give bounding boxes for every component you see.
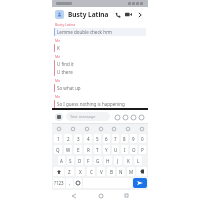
staticText: D (78, 158, 82, 164)
button[interactable]: Sticker (83, 125, 90, 132)
button[interactable]: Shift (53, 167, 64, 176)
button[interactable]: Text message (66, 112, 110, 121)
button[interactable]: V (97, 167, 105, 176)
button[interactable]: 2 (64, 134, 72, 143)
staticText: 9 (132, 136, 135, 142)
button[interactable]: 9 (130, 134, 137, 143)
button[interactable]: 6 (103, 134, 110, 143)
button[interactable]: L (134, 156, 142, 165)
button[interactable]: Y (103, 145, 110, 154)
button[interactable]: B (107, 167, 115, 176)
button[interactable]: Backspace (136, 167, 147, 176)
staticText: J (117, 158, 119, 164)
staticText: W (66, 147, 71, 153)
staticText: 8 (123, 136, 126, 142)
button[interactable]: Recents (122, 191, 131, 200)
button[interactable]: E (74, 145, 82, 154)
button[interactable] (55, 10, 64, 19)
staticText: L (137, 158, 140, 164)
staticText: K (57, 45, 60, 51)
button[interactable]: Q (54, 145, 62, 154)
button[interactable]: Home (96, 191, 105, 200)
staticText: Me (55, 54, 61, 59)
button[interactable]: 8 (121, 134, 128, 143)
button[interactable]: H (104, 156, 112, 165)
staticText: Me (55, 78, 61, 83)
button[interactable]: F (85, 156, 92, 165)
button[interactable]: More (134, 9, 145, 20)
button[interactable]: U there (54, 68, 146, 76)
button[interactable]: Emoji (74, 178, 82, 188)
button[interactable]: Gallery (129, 113, 137, 121)
staticText: P (141, 147, 144, 153)
button[interactable]: 4 (84, 134, 92, 143)
staticText: Busty Latina (55, 22, 76, 27)
staticText: ?123 (54, 180, 64, 186)
staticText: 7 (114, 136, 117, 142)
button[interactable]: GIF (69, 125, 76, 132)
staticText: E (77, 147, 80, 153)
button[interactable]: G (94, 156, 102, 165)
staticText: 4 (87, 136, 90, 142)
button[interactable]: 5 (94, 134, 101, 143)
button[interactable]: 0 (139, 134, 146, 143)
staticText: 1 (57, 136, 60, 142)
staticText: H (106, 158, 110, 164)
button[interactable]: Clipboard (97, 125, 104, 132)
button[interactable]: D (76, 156, 83, 165)
button[interactable]: Emoji (121, 113, 129, 121)
button[interactable]: So what up (54, 84, 146, 92)
staticText: R (87, 147, 90, 153)
button[interactable]: N (117, 167, 125, 176)
button[interactable]: Z (65, 167, 74, 176)
staticText: C (90, 169, 93, 175)
button[interactable]: Settings (110, 125, 117, 132)
staticText: S (69, 158, 72, 164)
button[interactable]: J (114, 156, 122, 165)
staticText: 0 (141, 136, 144, 142)
staticText: U find it (57, 61, 74, 67)
button[interactable]: O (130, 145, 137, 154)
button[interactable]: Back (69, 191, 78, 200)
button[interactable]: Call (112, 9, 123, 20)
button[interactable]: U find it (54, 60, 146, 68)
button[interactable]: Camera (55, 113, 63, 121)
button[interactable]: S (67, 156, 74, 165)
button[interactable]: I (121, 145, 128, 154)
button[interactable]: K (124, 156, 132, 165)
button[interactable]: Attach (137, 113, 145, 121)
staticText: 5 (96, 136, 99, 142)
button[interactable]: P (139, 145, 146, 154)
staticText: K (127, 158, 130, 164)
staticText: Text message (70, 114, 96, 119)
button[interactable]: Mic (138, 125, 145, 132)
button[interactable]: Send (133, 178, 147, 188)
button[interactable]: 3 (74, 134, 82, 143)
button[interactable]: Google (55, 125, 62, 132)
button[interactable]: R (84, 145, 92, 154)
button[interactable]: U (112, 145, 119, 154)
button[interactable]: ?123 (53, 178, 65, 188)
button[interactable]: Lemme double check hrm (54, 28, 146, 36)
staticText: So what up (57, 85, 81, 91)
button[interactable]: A (58, 156, 65, 165)
button[interactable]: More (124, 125, 131, 132)
button[interactable]: C (87, 167, 95, 176)
button[interactable]: M (127, 167, 135, 176)
staticText: F (87, 158, 90, 164)
button[interactable]: T (94, 145, 101, 154)
button[interactable]: X (76, 167, 85, 176)
button[interactable]: W (64, 145, 72, 154)
button[interactable]: Video call (123, 9, 134, 20)
button[interactable]: 1 (54, 134, 62, 143)
staticText: , (69, 180, 71, 186)
staticText: 2 (67, 136, 70, 142)
button[interactable]: Voice (113, 113, 121, 121)
button[interactable]: So I guess nothing is happening (54, 100, 146, 108)
staticText: A (60, 158, 63, 164)
staticText: M (129, 169, 134, 175)
button[interactable]: , (66, 178, 73, 188)
button[interactable]: K (54, 44, 146, 52)
button[interactable]: 7 (112, 134, 119, 143)
